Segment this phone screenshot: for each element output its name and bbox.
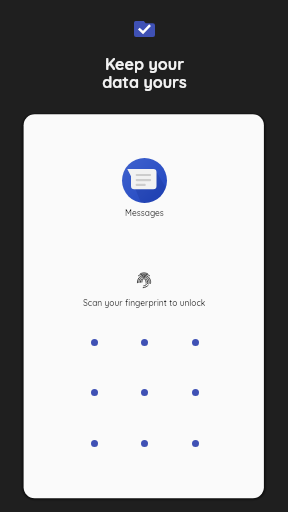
button[interactable]: Pattern dot [119, 418, 169, 468]
staticText: Scan your fingerprint to unlock [83, 298, 206, 308]
button[interactable]: Pattern dot [119, 317, 169, 367]
button[interactable]: Fingerprint sensor [137, 272, 151, 288]
staticText: Keep your data yours [102, 54, 187, 92]
staticText: Messages [125, 208, 164, 218]
button[interactable]: Your data is protected [134, 21, 155, 37]
button[interactable]: Pattern dot [69, 317, 119, 367]
button[interactable]: Pattern dot [170, 418, 220, 468]
button[interactable]: Pattern dot [69, 418, 119, 468]
button[interactable]: Pattern dot [170, 367, 220, 417]
button[interactable]: Messages [122, 158, 167, 203]
button[interactable]: Pattern dot [119, 367, 169, 417]
button[interactable]: Pattern dot [170, 317, 220, 367]
button[interactable]: Pattern dot [69, 367, 119, 417]
